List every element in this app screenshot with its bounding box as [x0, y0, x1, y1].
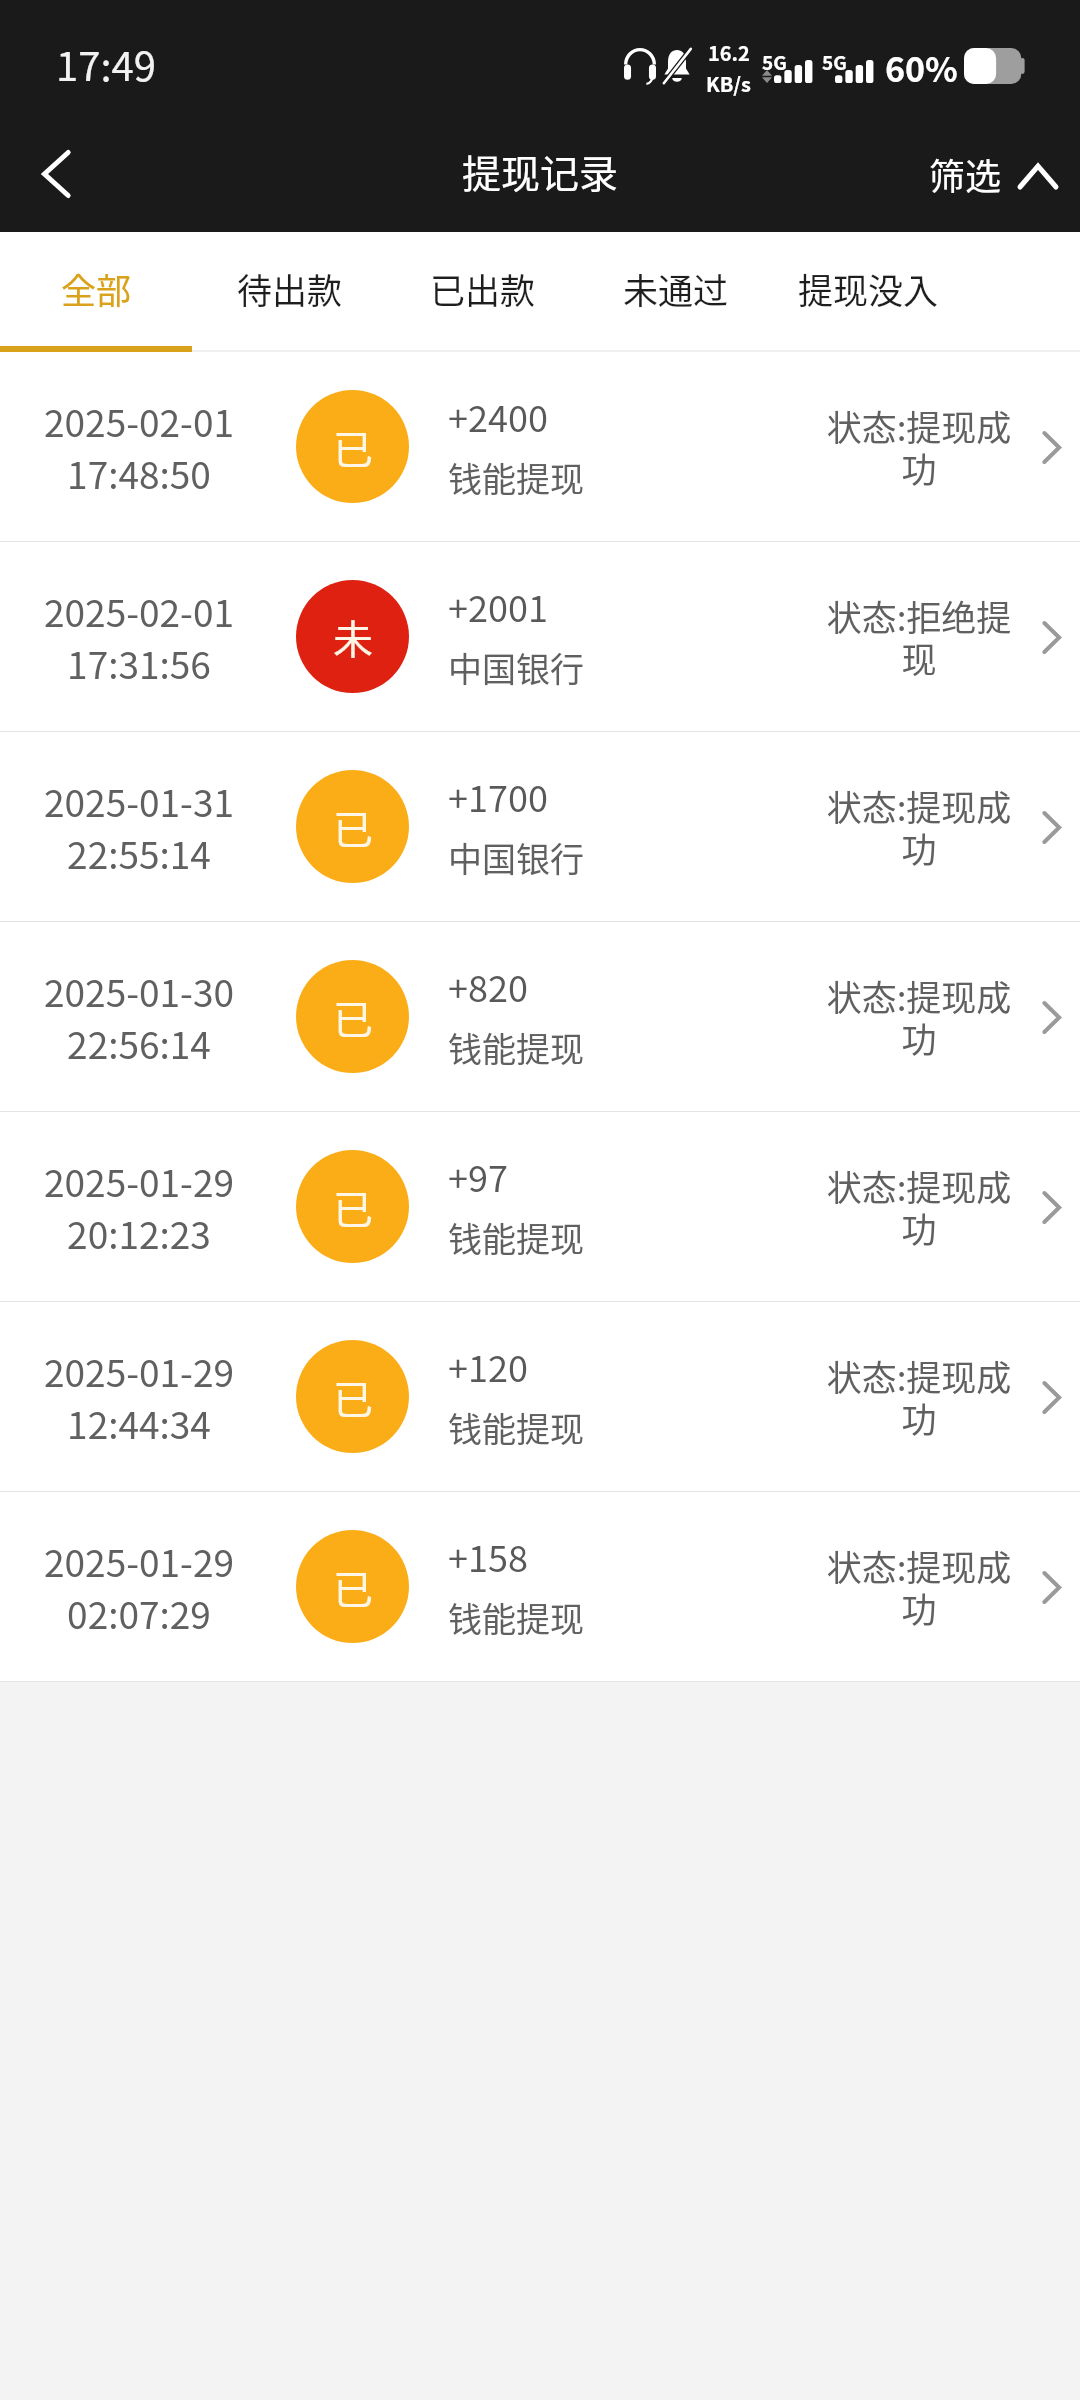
button[interactable]: 2025-01-29 20:12:23 [0, 1112, 1080, 1302]
staticText: 已 [333, 1178, 373, 1236]
staticText: 状态:提现成功 [825, 780, 1013, 874]
staticText: 5G [762, 48, 787, 76]
staticText: +2001 [448, 580, 548, 632]
staticText: 提现记录 [462, 143, 619, 199]
staticText: +158 [448, 1530, 528, 1582]
staticText: 2025-01-29 20:12:23 [44, 1154, 234, 1259]
staticText: 2025-01-30 22:56:14 [44, 964, 234, 1069]
button[interactable]: 2025-02-01 17:48:50 [0, 352, 1080, 542]
staticText: KB/s [706, 69, 751, 98]
staticText: 已 [333, 988, 373, 1046]
button[interactable]: 2025-02-01 17:31:56 [0, 542, 1080, 732]
staticText: 2025-02-01 17:48:50 [44, 394, 234, 499]
staticText: 已出款 [430, 263, 536, 314]
staticText: 状态:拒绝提现 [825, 590, 1013, 684]
button[interactable]: 待出款 [193, 232, 386, 352]
staticText: +820 [448, 960, 528, 1012]
staticText: 已 [333, 418, 373, 476]
staticText: 中国银行 [448, 643, 584, 692]
button[interactable]: 已出款 [386, 232, 579, 352]
button[interactable]: 筛选 [929, 116, 1056, 232]
button[interactable]: 2025-01-29 02:07:29 [0, 1492, 1080, 1682]
button[interactable]: 2025-01-30 22:56:14 [0, 922, 1080, 1112]
staticText: 状态:提现成功 [825, 1540, 1013, 1634]
button[interactable]: 全部 [0, 232, 193, 352]
button[interactable]: 2025-01-31 22:55:14 [0, 732, 1080, 922]
staticText: 已 [333, 1558, 373, 1616]
staticText: 2025-01-29 02:07:29 [44, 1534, 234, 1639]
staticText: 钱能提现 [448, 1023, 584, 1072]
staticText: 16.2 [708, 38, 750, 67]
staticText: 未 [333, 608, 373, 666]
staticText: 17:49 [56, 35, 156, 93]
staticText: 待出款 [237, 263, 343, 314]
staticText: 状态:提现成功 [825, 970, 1013, 1064]
staticText: 已 [333, 798, 373, 856]
staticText: +97 [448, 1150, 508, 1202]
staticText: 未通过 [623, 263, 729, 314]
staticText: 全部 [61, 263, 132, 314]
staticText: +1700 [448, 770, 548, 822]
staticText: 钱能提现 [448, 1213, 584, 1262]
staticText: 中国银行 [448, 833, 584, 882]
staticText: 状态:提现成功 [825, 1160, 1013, 1254]
staticText: +120 [448, 1340, 528, 1392]
staticText: 已 [333, 1368, 373, 1426]
staticText: 60% [885, 43, 958, 92]
staticText: 2025-02-01 17:31:56 [44, 584, 234, 689]
staticText: 状态:提现成功 [825, 1350, 1013, 1444]
staticText: 5G [822, 48, 847, 76]
staticText: 钱能提现 [448, 453, 584, 502]
staticText: 钱能提现 [448, 1403, 584, 1452]
staticText: +2400 [448, 390, 548, 442]
staticText: 状态:提现成功 [825, 400, 1013, 494]
button[interactable]: Back [0, 116, 112, 232]
staticText: 2025-01-31 22:55:14 [44, 774, 234, 879]
button[interactable]: 提现没入 [772, 232, 965, 352]
staticText: 2025-01-29 12:44:34 [44, 1344, 234, 1449]
button[interactable]: 未通过 [579, 232, 772, 352]
staticText: 筛选 [929, 148, 1002, 200]
button[interactable]: 2025-01-29 12:44:34 [0, 1302, 1080, 1492]
staticText: 提现没入 [798, 263, 939, 314]
staticText: 钱能提现 [448, 1593, 584, 1642]
